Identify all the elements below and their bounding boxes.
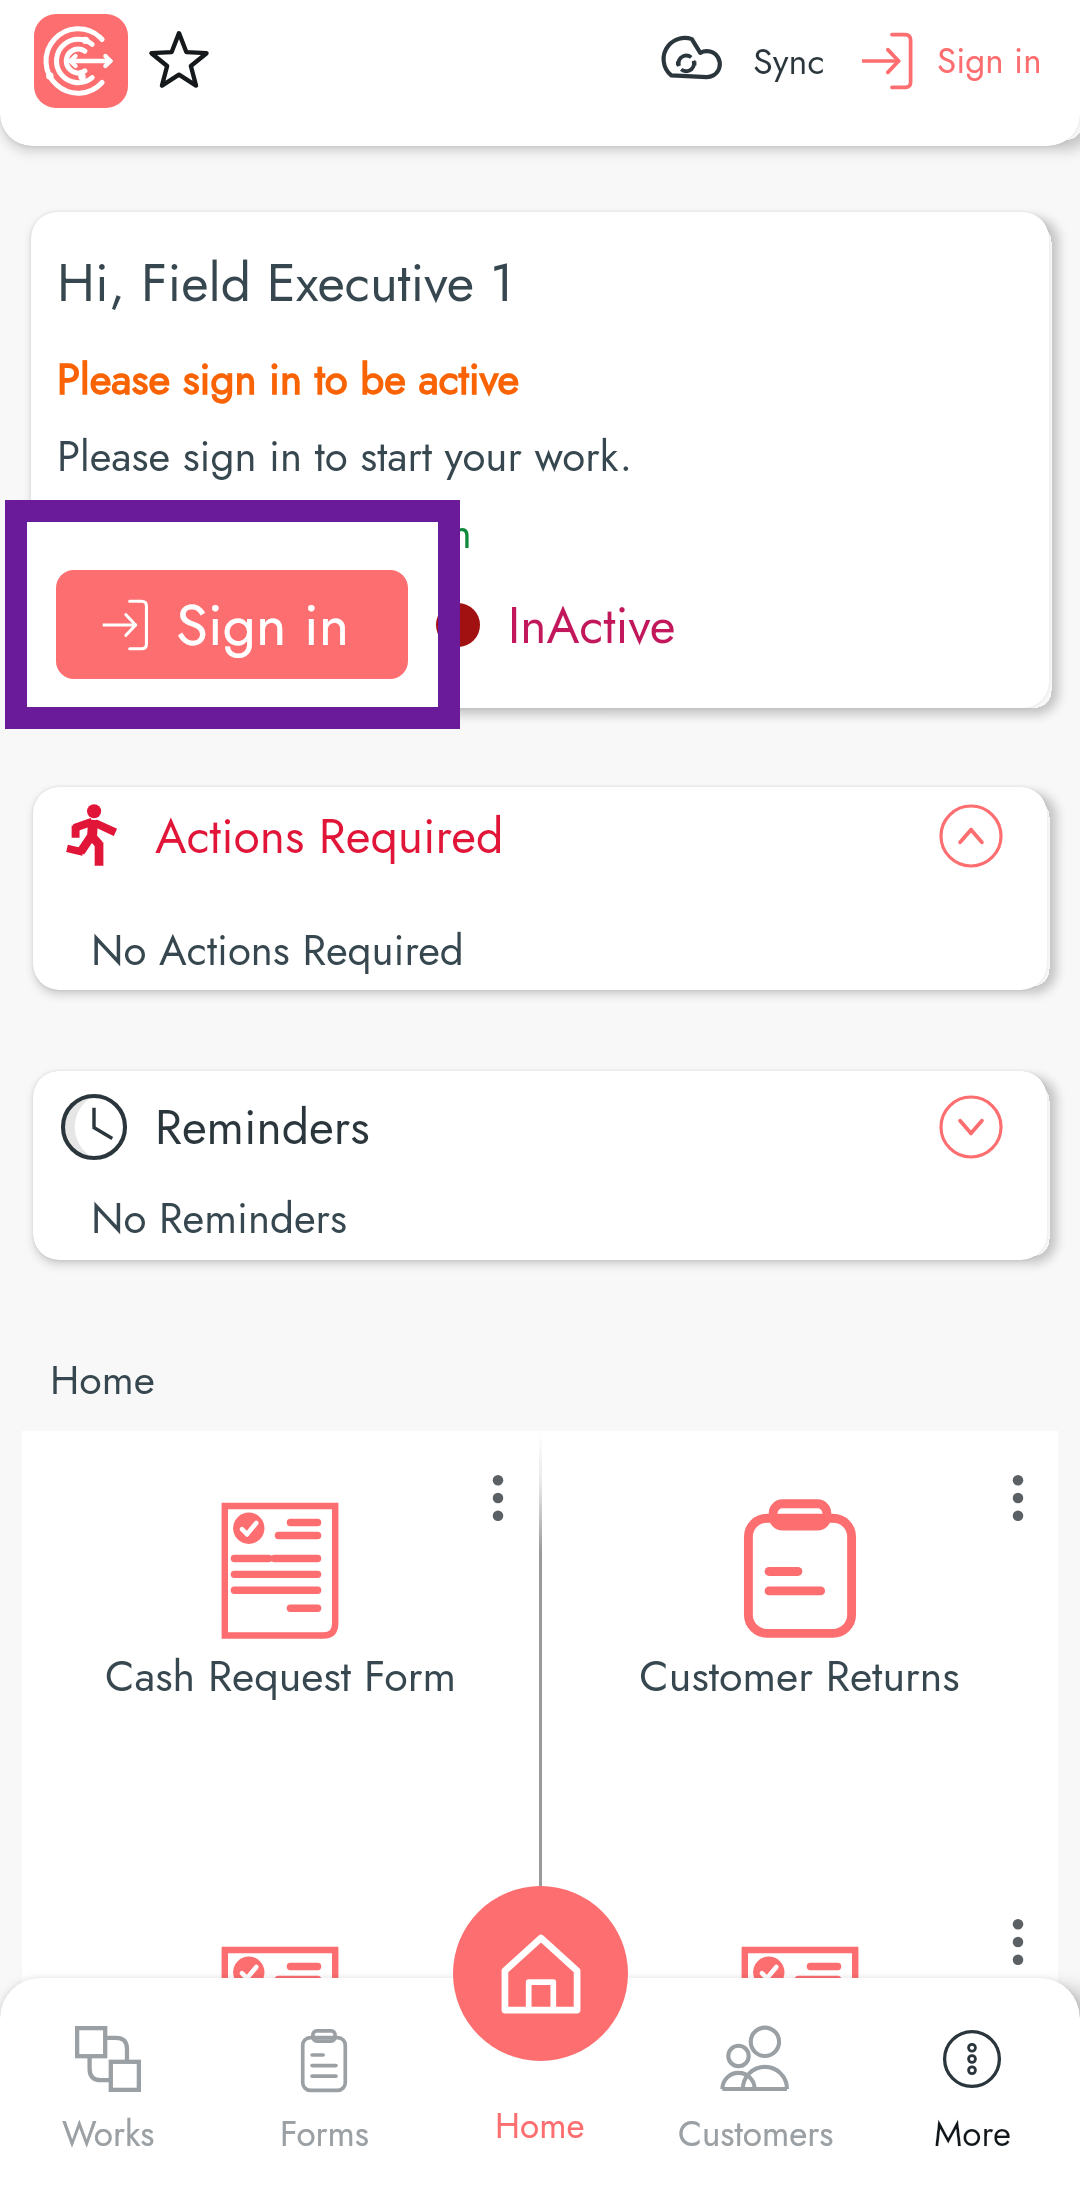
staticText: Last synced at 11.31 am xyxy=(57,503,472,564)
staticText: Stock Request xyxy=(673,2089,926,2151)
staticText: Hi, Field Executive 1 xyxy=(57,244,514,321)
staticText: Delivery Note xyxy=(155,2089,406,2151)
button[interactable]: Collapse xyxy=(938,803,1004,869)
staticText: InActive xyxy=(508,589,676,661)
staticText: Sign in xyxy=(937,36,1042,87)
staticText: Customers xyxy=(678,2109,834,2160)
button[interactable]: Works xyxy=(0,1978,216,2190)
button[interactable]: Sync xyxy=(657,27,831,95)
button[interactable]: Sign in xyxy=(853,23,1048,99)
staticText: Home xyxy=(50,1350,155,1409)
staticText: No Reminders xyxy=(91,1188,347,1249)
button[interactable]: More options xyxy=(492,1475,504,1521)
button[interactable]: App logo xyxy=(34,14,128,108)
button[interactable]: Stock Request xyxy=(541,1875,1058,2190)
staticText: Customer Returns xyxy=(639,1645,960,1707)
button[interactable]: Customers xyxy=(648,1978,864,2190)
button[interactable]: More options xyxy=(1012,1919,1024,1965)
staticText: More xyxy=(934,2109,1011,2160)
button[interactable]: Actions Required xyxy=(33,787,1047,885)
button[interactable]: Home xyxy=(453,1886,628,2061)
staticText: Home xyxy=(495,2101,585,2152)
staticText: Please sign in to be active xyxy=(57,349,520,410)
button[interactable]: Home xyxy=(432,1978,648,2190)
button[interactable]: Cash Request Form xyxy=(22,1431,538,1875)
button[interactable]: More options xyxy=(1012,1475,1024,1521)
button[interactable]: Reminders xyxy=(33,1071,1047,1183)
button[interactable]: Favourite xyxy=(148,30,210,92)
button[interactable]: Delivery Note xyxy=(22,1875,538,2190)
button[interactable]: Expand xyxy=(938,1094,1004,1160)
staticText: Actions Required xyxy=(155,802,504,871)
staticText: Sign in xyxy=(176,583,350,667)
button[interactable]: Sign in xyxy=(56,570,408,679)
staticText: Sync xyxy=(753,35,825,87)
staticText: Reminders xyxy=(155,1093,370,1162)
button[interactable]: Forms xyxy=(216,1978,432,2190)
staticText: No Actions Required xyxy=(91,920,464,981)
staticText: Forms xyxy=(280,2109,369,2160)
staticText: Works xyxy=(62,2109,155,2160)
button[interactable]: More xyxy=(864,1978,1080,2190)
staticText: Please sign in to start your work. xyxy=(57,426,633,487)
button[interactable]: Customer Returns xyxy=(541,1431,1058,1875)
staticText: Cash Request Form xyxy=(105,1645,456,1707)
